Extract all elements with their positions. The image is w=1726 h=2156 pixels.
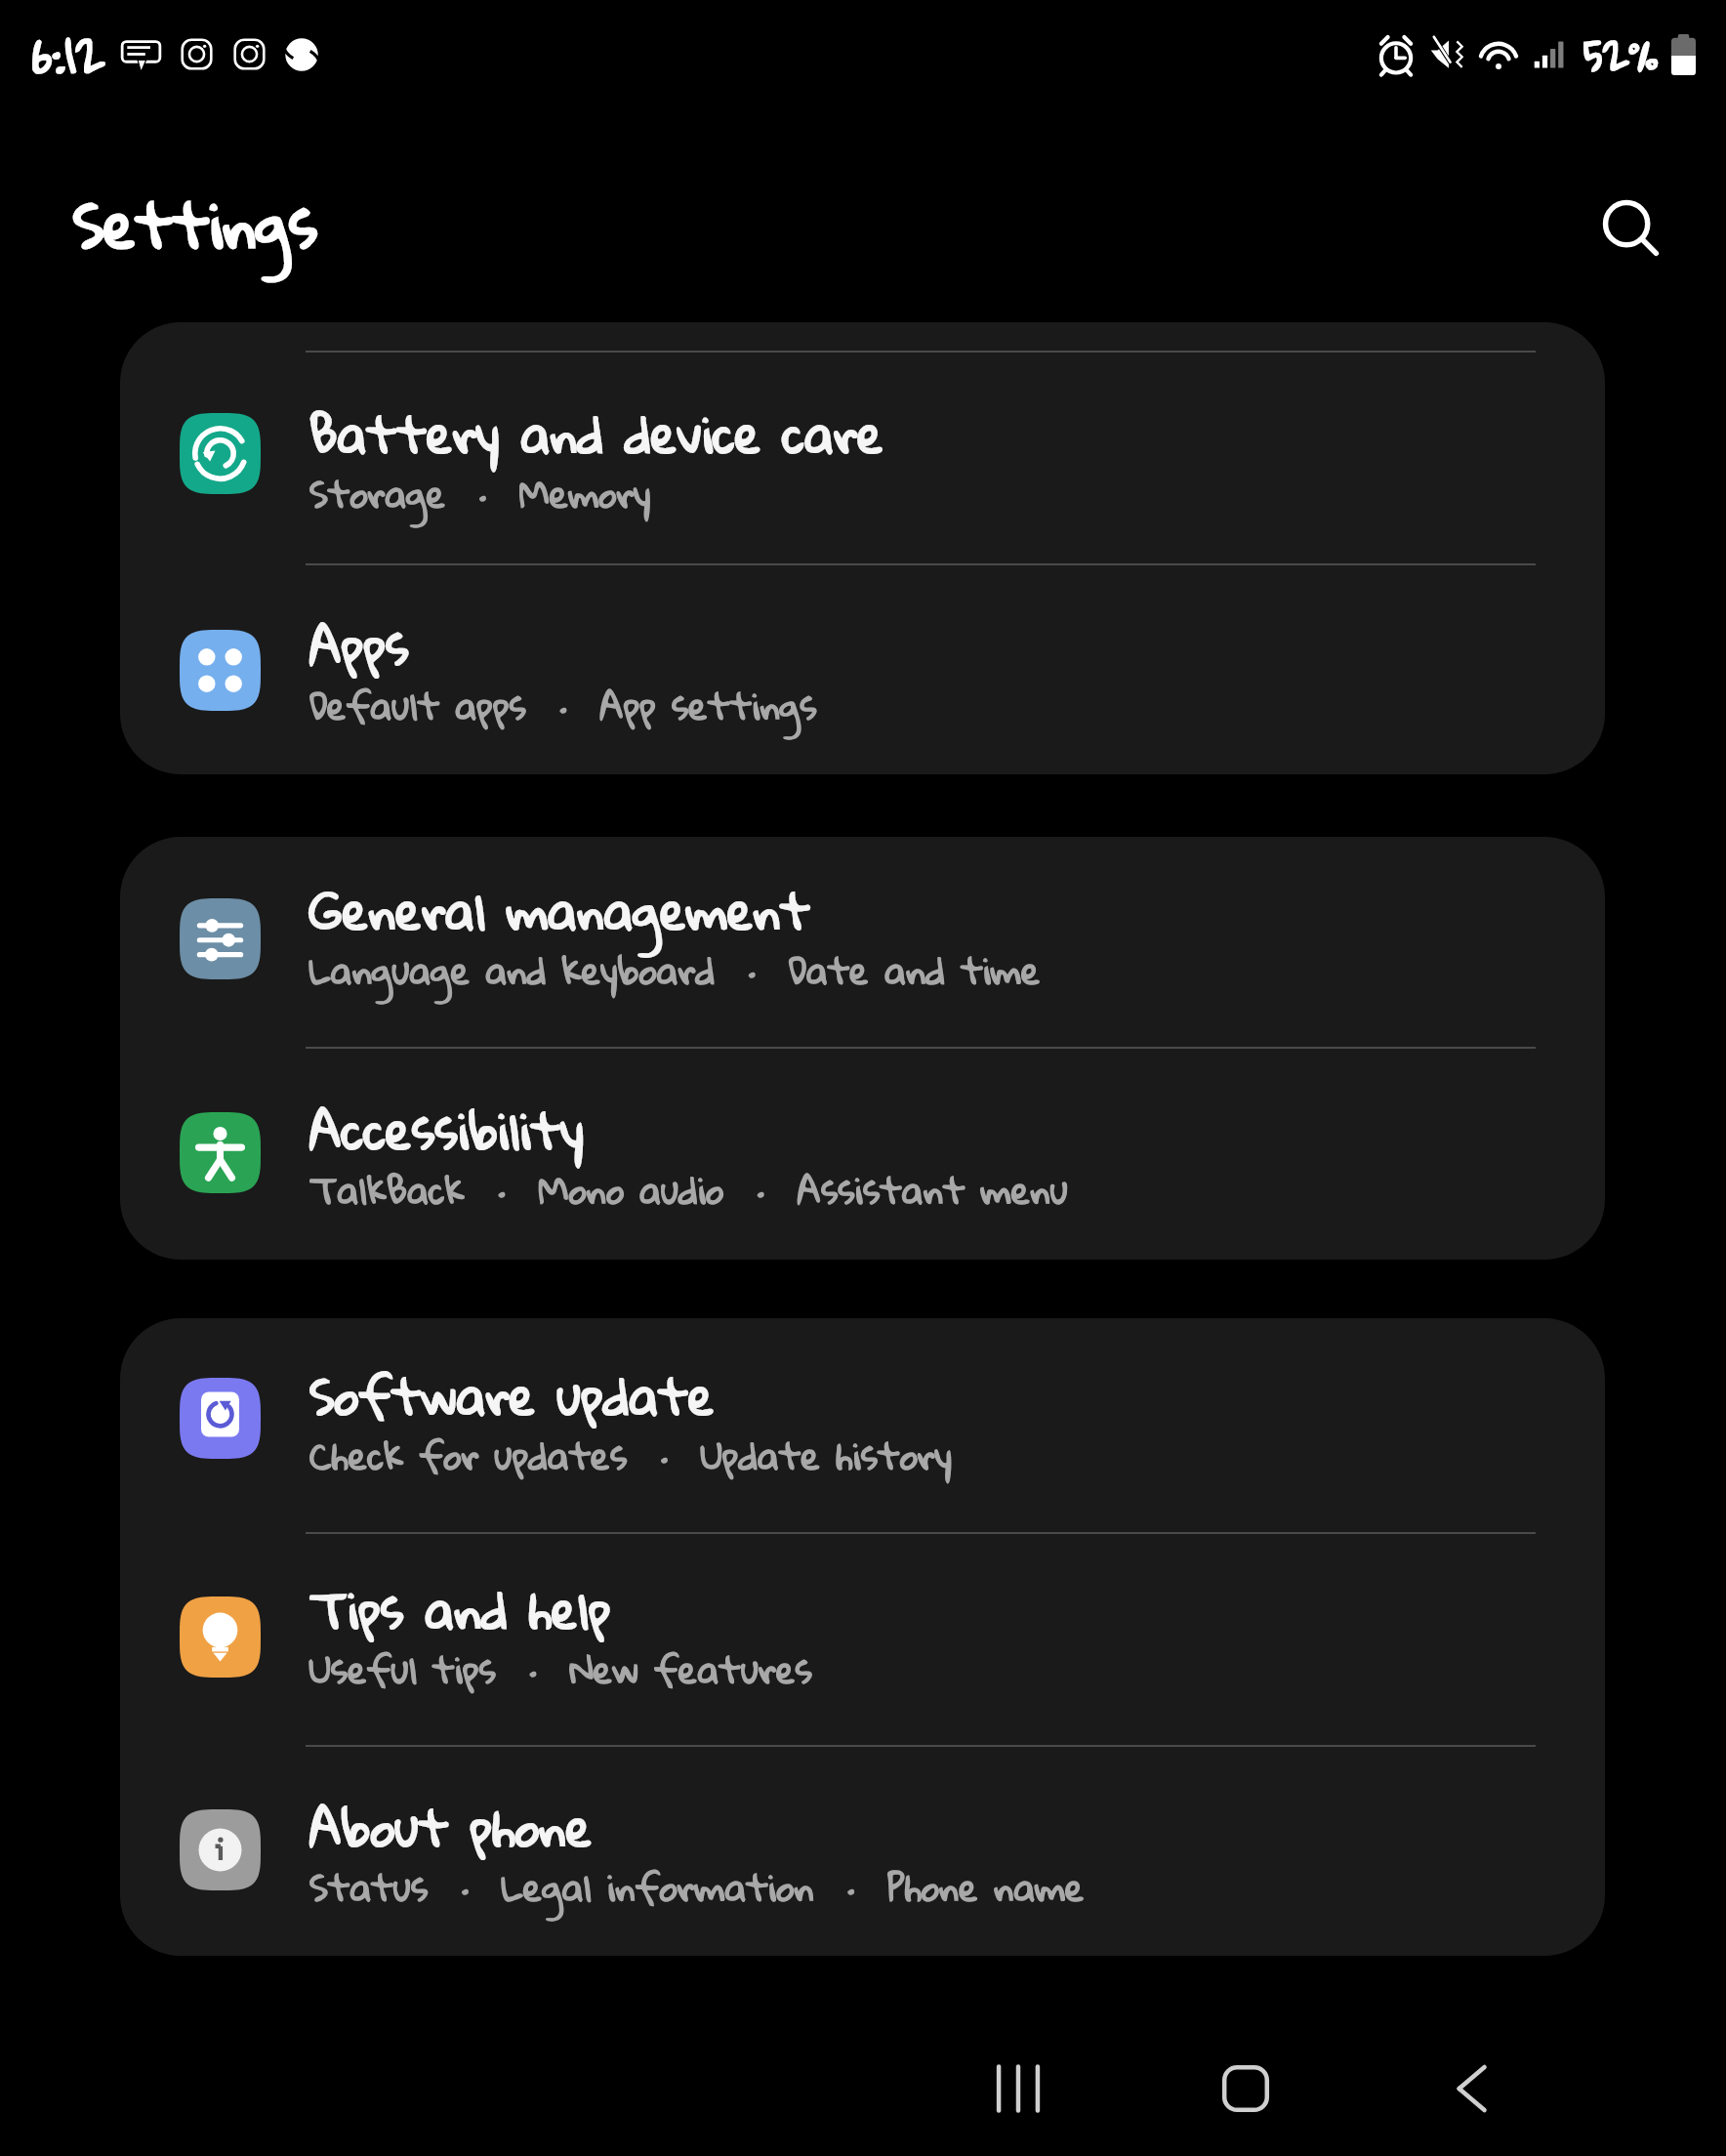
- staticText: Battery and device care: [309, 386, 884, 480]
- staticText: Useful tips · New features: [309, 1634, 812, 1703]
- staticText: General management: [309, 862, 811, 957]
- button[interactable]: Search: [1578, 175, 1685, 282]
- staticText: Software update: [309, 1347, 715, 1442]
- staticText: General management: [309, 862, 811, 957]
- staticText: Language and keyboard · Date and time: [309, 934, 1041, 1004]
- staticText: Accessibility: [309, 1082, 585, 1177]
- staticText: Default apps · App settings: [309, 670, 817, 739]
- button[interactable]: Tips and help: [120, 1534, 1605, 1745]
- button[interactable]: About phone: [120, 1747, 1605, 1956]
- staticText: Storage · Memory: [309, 458, 651, 527]
- staticText: TalkBack · Mono audio · Assistant menu: [309, 1154, 1068, 1223]
- staticText: TalkBack · Mono audio · Assistant menu: [309, 1154, 1068, 1223]
- staticText: Settings: [73, 166, 317, 282]
- staticText: Apps: [309, 598, 409, 692]
- button[interactable]: Accessibility: [120, 1049, 1605, 1260]
- staticText: Tips and help: [309, 1561, 611, 1656]
- staticText: About phone: [309, 1779, 593, 1874]
- staticText: Status · Legal information · Phone name: [309, 1851, 1085, 1921]
- button[interactable]: General management: [120, 837, 1605, 1047]
- button[interactable]: Apps: [120, 565, 1605, 774]
- staticText: Apps: [309, 598, 409, 692]
- staticText: Useful tips · New features: [309, 1634, 812, 1703]
- staticText: Check for updates · Update history: [309, 1420, 953, 1489]
- button[interactable]: Software update: [120, 1318, 1605, 1532]
- staticText: Storage · Memory: [309, 458, 651, 527]
- staticText: 52%: [1583, 15, 1660, 94]
- staticText: Battery and device care: [309, 386, 884, 480]
- button[interactable]: Recent apps: [965, 2035, 1072, 2142]
- staticText: Default apps · App settings: [309, 670, 817, 739]
- staticText: 6:12: [32, 10, 105, 99]
- staticText: Status · Legal information · Phone name: [309, 1851, 1085, 1921]
- button[interactable]: Back: [1420, 2035, 1528, 2142]
- button[interactable]: Home: [1192, 2035, 1299, 2142]
- button[interactable]: Battery and device care: [120, 352, 1605, 563]
- staticText: 6:12: [32, 10, 105, 99]
- staticText: Accessibility: [309, 1082, 585, 1177]
- staticText: Tips and help: [309, 1561, 611, 1656]
- staticText: Software update: [309, 1347, 715, 1442]
- staticText: Language and keyboard · Date and time: [309, 934, 1041, 1004]
- staticText: Check for updates · Update history: [309, 1420, 953, 1489]
- staticText: About phone: [309, 1779, 593, 1874]
- staticText: Settings: [73, 166, 317, 282]
- staticText: 52%: [1583, 15, 1660, 94]
